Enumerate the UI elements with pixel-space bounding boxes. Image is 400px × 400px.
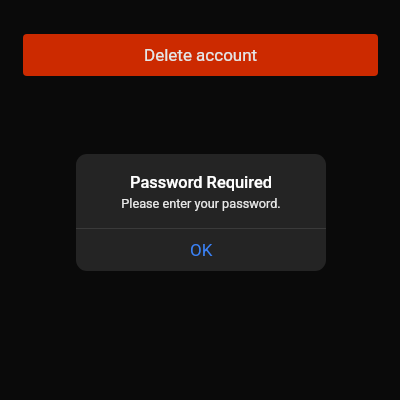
staticText: Password Required: [76, 173, 326, 192]
button[interactable]: OK: [76, 229, 326, 271]
button[interactable]: Delete account: [23, 34, 378, 76]
staticText: OK: [190, 240, 213, 260]
staticText: Delete account: [144, 45, 258, 65]
staticText: Please enter your password.: [76, 196, 326, 211]
